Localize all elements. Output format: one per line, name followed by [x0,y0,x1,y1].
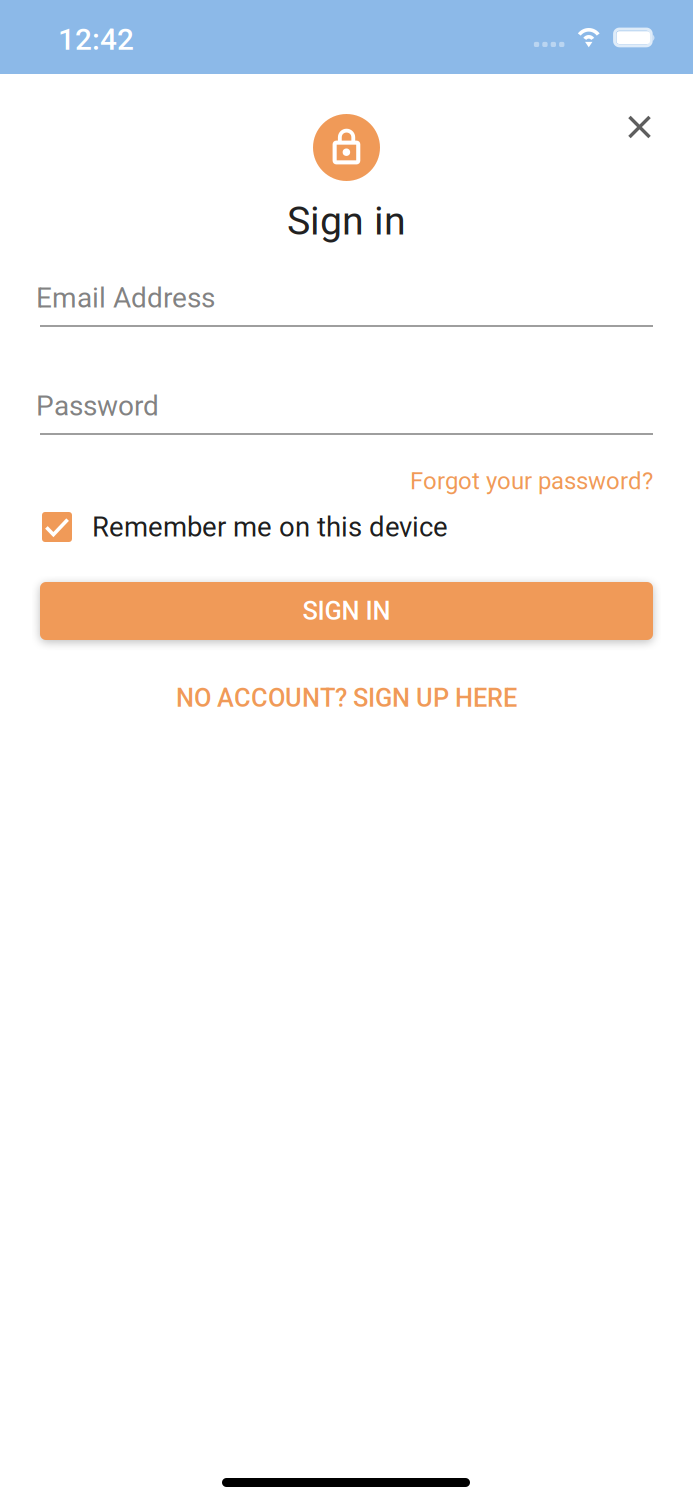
button[interactable]: Forgot your password? [0,0,693,1500]
button[interactable]: Close [0,0,693,1500]
staticText: Forgot your password? [410,467,653,495]
staticText: SIGN IN [302,596,390,626]
staticText: Remember me on this device [92,511,448,543]
button[interactable]: NO ACCOUNT? SIGN UP HERE [0,0,693,1500]
staticText: Password [36,390,159,422]
button[interactable]: Email Address [0,0,693,1500]
button[interactable]: Password [0,0,693,1500]
staticText: 12:42 [58,22,134,57]
staticText: Email Address [36,282,215,314]
button[interactable]: Remember me on this device [0,0,693,1500]
staticText: Sign in [287,198,406,244]
staticText: NO ACCOUNT? SIGN UP HERE [176,683,517,713]
button[interactable]: SIGN IN [0,0,693,1500]
